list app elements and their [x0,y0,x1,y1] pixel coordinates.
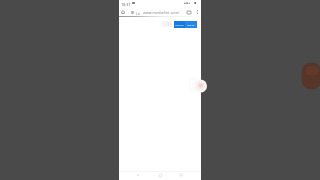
button[interactable]: Tabs [186,10,191,15]
button[interactable]: More options [195,10,199,14]
staticText: Log In [187,23,195,26]
button[interactable]: Log In [185,21,197,28]
button[interactable]: Recent apps [177,171,185,179]
staticText: www.mediafire.com/ [143,10,180,15]
staticText: Upload [175,23,184,26]
button[interactable]: Home [156,171,164,179]
staticText: Lis [136,11,141,15]
button[interactable]: Lis [131,10,186,15]
staticText: 10:31 [121,2,131,7]
button[interactable]: Home [121,10,125,14]
button[interactable]: Upload [174,21,185,28]
button[interactable]: Back [134,171,142,179]
